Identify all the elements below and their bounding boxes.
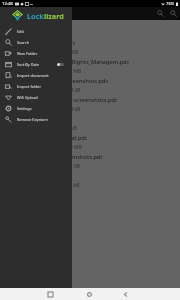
- button[interactable]: Home: [83, 288, 95, 300]
- staticText: Import folder: [17, 84, 42, 89]
- button[interactable]: Safeguard PDF Security Rights_Managem.pd…: [0, 55, 180, 74]
- button[interactable]: Settings: [0, 103, 72, 114]
- staticText: Tue 09 Apr 2019 11:55 · 26.4 kB: [8, 182, 80, 188]
- button[interactable]: Safeguard Viewer Do.pdc: [0, 36, 180, 55]
- staticText: Safeguard Viewer 4 new-screenshots.pdc: [8, 96, 118, 104]
- staticText: Thu 11 Apr 2019 08:33 · 1.13 MB: [8, 144, 82, 150]
- staticText: Safeguard viewer manual.pdc: [8, 134, 88, 142]
- button[interactable]: Safeguard viewer manual.pdc: [0, 131, 180, 150]
- button[interactable]: Sort By Date: [0, 59, 72, 70]
- staticText: 76%: [166, 1, 175, 7]
- button[interactable]: More options: [167, 7, 180, 20]
- button[interactable]: Edit: [0, 26, 72, 37]
- button[interactable]: Test.pdc: [0, 112, 180, 131]
- staticText: Sort By Date: [17, 62, 40, 67]
- staticText: Tue 16 Apr 2019 10:20 · 287 kB: [8, 49, 79, 55]
- button[interactable]: Viewer Android 4.1 screenshots.pdc: [0, 150, 180, 169]
- staticText: Fri 12 Apr 2019 17:02 · 41.3 kB: [8, 125, 77, 131]
- staticText: Safeguard Viewer Do.pdc: [8, 39, 76, 47]
- button[interactable]: Search: [0, 37, 72, 48]
- button[interactable]: Import folder: [0, 81, 72, 92]
- staticText: Edit: [17, 29, 24, 34]
- button[interactable]: Recents: [44, 288, 56, 300]
- staticText: Remove Keystore: [17, 117, 48, 122]
- staticText: Wifi Upload: [17, 95, 38, 100]
- button[interactable]: Safeguard Viewer ap-screenshots.pdc: [0, 74, 180, 93]
- button[interactable]: Wifi Upload: [0, 92, 72, 103]
- button[interactable]: New Folder: [0, 48, 72, 59]
- staticText: Viewer Android 4.1 screenshots.pdc: [8, 153, 104, 161]
- staticText: Mon 15 Apr 2019 09:48 · 918 kB: [8, 87, 81, 93]
- staticText: Tue 16 Apr 2019 10:21 · 1.25 MB: [8, 68, 82, 74]
- staticText: Import document: [17, 73, 49, 78]
- staticText: Test.pdc: [8, 115, 31, 123]
- staticText: Mon 15 Apr 2019 09:50 · 354 kB: [8, 106, 81, 112]
- staticText: Search: [17, 40, 30, 45]
- staticText: Safeguard Viewer ap-screenshots.pdc: [8, 77, 109, 85]
- staticText: lizard: [44, 11, 64, 21]
- button[interactable]: Notes.pdc: [0, 169, 180, 188]
- staticText: New Folder: [17, 51, 38, 56]
- staticText: Safeguard PDF Security Rights_Managem.pd…: [8, 58, 130, 66]
- button[interactable]: Search: [154, 7, 167, 20]
- button[interactable]: Safeguard Viewer 4 new-screenshots.pdc: [0, 93, 180, 112]
- staticText: 12:48: [2, 1, 13, 7]
- button[interactable]: Remove Keystore: [0, 114, 72, 125]
- button[interactable]: Back: [119, 288, 131, 300]
- staticText: Lock: [27, 11, 44, 21]
- staticText: Wed 10 Apr 2019 14:12 · 661 kB: [8, 163, 81, 169]
- staticText: Settings: [17, 106, 32, 111]
- button[interactable]: Import document: [0, 70, 72, 81]
